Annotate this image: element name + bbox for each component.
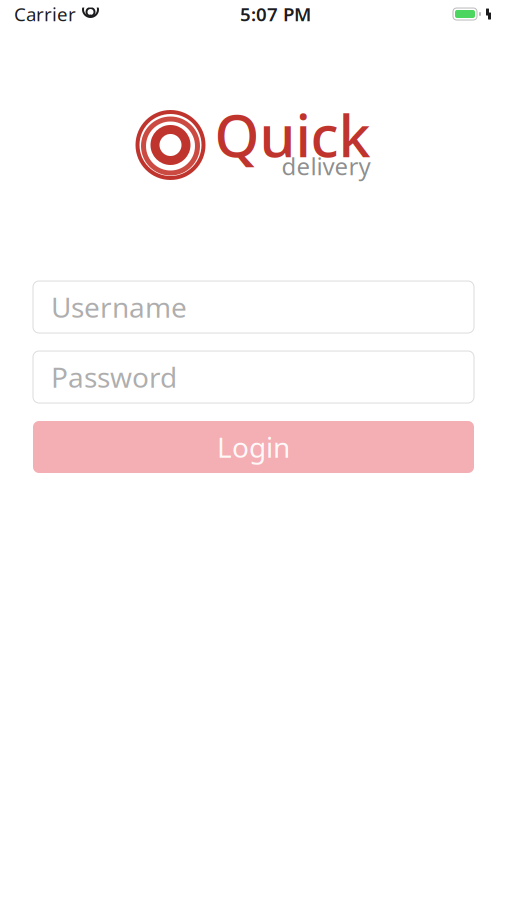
button[interactable]: Username <box>33 281 474 333</box>
staticText: delivery <box>281 150 370 182</box>
staticText: Username <box>51 288 187 326</box>
staticText: Login <box>217 428 290 466</box>
staticText: 5:07 PM <box>240 2 311 26</box>
button[interactable]: Password <box>33 351 474 403</box>
button[interactable]: Login <box>33 421 474 473</box>
staticText: Password <box>51 358 177 396</box>
staticText: Quick <box>214 97 370 173</box>
staticText: Carrier <box>14 2 76 26</box>
